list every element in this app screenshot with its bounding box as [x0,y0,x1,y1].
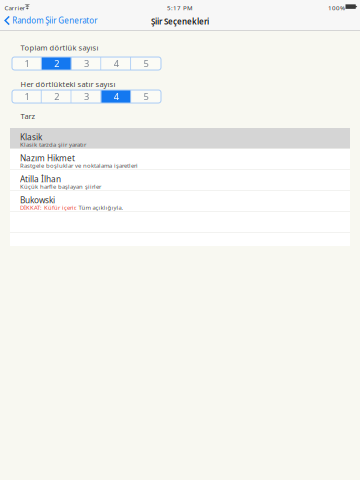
button[interactable]: 3 [72,57,101,70]
button[interactable]: Bukowski [10,191,350,211]
staticText: Bukowski [20,194,55,206]
staticText: Klasik tarzda şiir yaratır [20,140,86,148]
button[interactable]: Random Şiir Generator [0,13,101,28]
staticText: DİKKAT: Küfür içerir. [20,203,77,211]
staticText: 3 [84,57,89,70]
staticText: 2 [54,57,59,70]
staticText: Random Şiir Generator [12,15,97,26]
button[interactable]: 5 [131,90,161,103]
staticText: 2 [54,90,59,103]
button[interactable]: 4 [101,90,131,103]
staticText: 1 [24,57,29,70]
staticText: 5:17 PM [167,4,193,12]
staticText: 5 [144,90,149,103]
button[interactable]: 1 [12,90,42,103]
staticText: Rastgele boşluklar ve noktalama işaretle… [20,161,138,169]
staticText: 5 [144,57,149,70]
staticText: Carrier [4,4,25,12]
button[interactable]: 4 [101,57,131,70]
button[interactable]: 3 [72,90,101,103]
staticText: 3 [84,90,89,103]
staticText: Toplam dörtlük sayısı [20,42,98,53]
staticText: Her dörtlükteki satır sayısı [20,79,115,89]
staticText: 4 [114,57,119,70]
button[interactable]: 5 [131,57,161,70]
staticText: Küçük harfle başlayan şiirler [20,182,101,190]
staticText: 4 [114,90,119,103]
staticText: Şiir Seçenekleri [151,16,209,27]
button[interactable]: 2 [42,90,72,103]
button[interactable]: Klasik [10,128,350,148]
button[interactable]: Nazım Hikmet [10,149,350,169]
staticText: Klasik [20,131,42,143]
button[interactable]: Atilla İlhan [10,170,350,190]
staticText: Nazım Hikmet [20,152,75,164]
staticText: Tarz [20,111,35,121]
staticText: Tüm açıklığıyla. [79,203,124,211]
staticText: 100% [328,4,345,12]
button[interactable]: 2 [42,57,72,70]
staticText: 1 [24,90,29,103]
button[interactable]: 1 [12,57,42,70]
staticText: Atilla İlhan [20,173,61,185]
